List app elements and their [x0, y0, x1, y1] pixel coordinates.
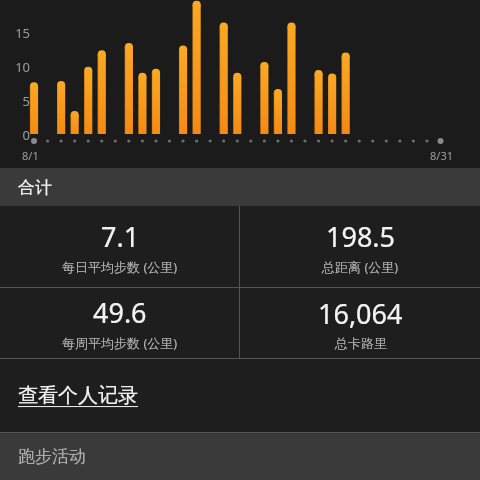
staticText: 跑步活动	[18, 446, 86, 467]
staticText: 7.1	[101, 218, 140, 255]
button[interactable]: 7.1	[0, 206, 239, 287]
staticText: 查看个人记录	[18, 383, 138, 408]
staticText: 198.5	[326, 218, 396, 255]
staticText: 15	[15, 24, 30, 42]
staticText: 8/31	[430, 148, 453, 163]
button[interactable]: 49.6	[0, 288, 239, 358]
staticText: 10	[15, 58, 30, 76]
staticText: 16,064	[318, 295, 403, 332]
staticText: 总卡路里	[335, 335, 387, 351]
staticText: 49.6	[93, 294, 147, 331]
staticText: 每周平均步数 (公里)	[62, 334, 178, 352]
button[interactable]: 跑步活动	[0, 433, 480, 480]
staticText: 每日平均步数 (公里)	[62, 258, 178, 276]
staticText: 5	[22, 92, 30, 110]
button[interactable]: 查看个人记录	[0, 359, 480, 432]
staticText: 0	[22, 126, 30, 144]
button[interactable]: 198.5	[240, 206, 480, 287]
button[interactable]: 16,064	[240, 288, 480, 358]
staticText: 总距离 (公里)	[322, 258, 399, 276]
staticText: 8/1	[22, 148, 39, 163]
staticText: 合计	[18, 177, 52, 198]
button[interactable]: 合计	[0, 168, 480, 206]
